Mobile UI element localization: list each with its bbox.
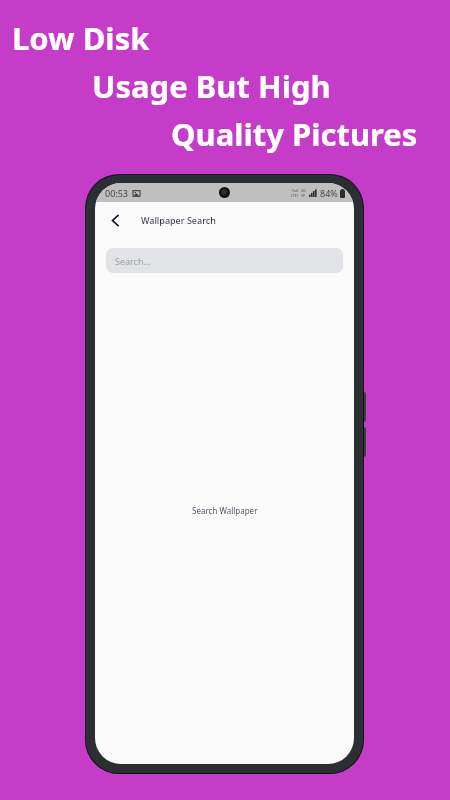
staticText: LTE1 [291,193,299,198]
staticText: VP [301,193,306,198]
staticText: Volt [292,188,299,193]
staticText: Quality Pictures [171,113,418,155]
staticText: Search Wallpaper [192,505,258,516]
staticText: Low Disk [12,17,150,59]
staticText: 84% [320,187,338,199]
button[interactable]: Back [101,206,129,234]
staticText: 00:53 [105,187,129,199]
staticText: Wallpaper Search [141,214,216,226]
staticText: Search... [115,255,151,267]
staticText: Usage But High [92,65,331,107]
button[interactable]: Search... [106,248,343,273]
staticText: 4G [301,188,306,193]
